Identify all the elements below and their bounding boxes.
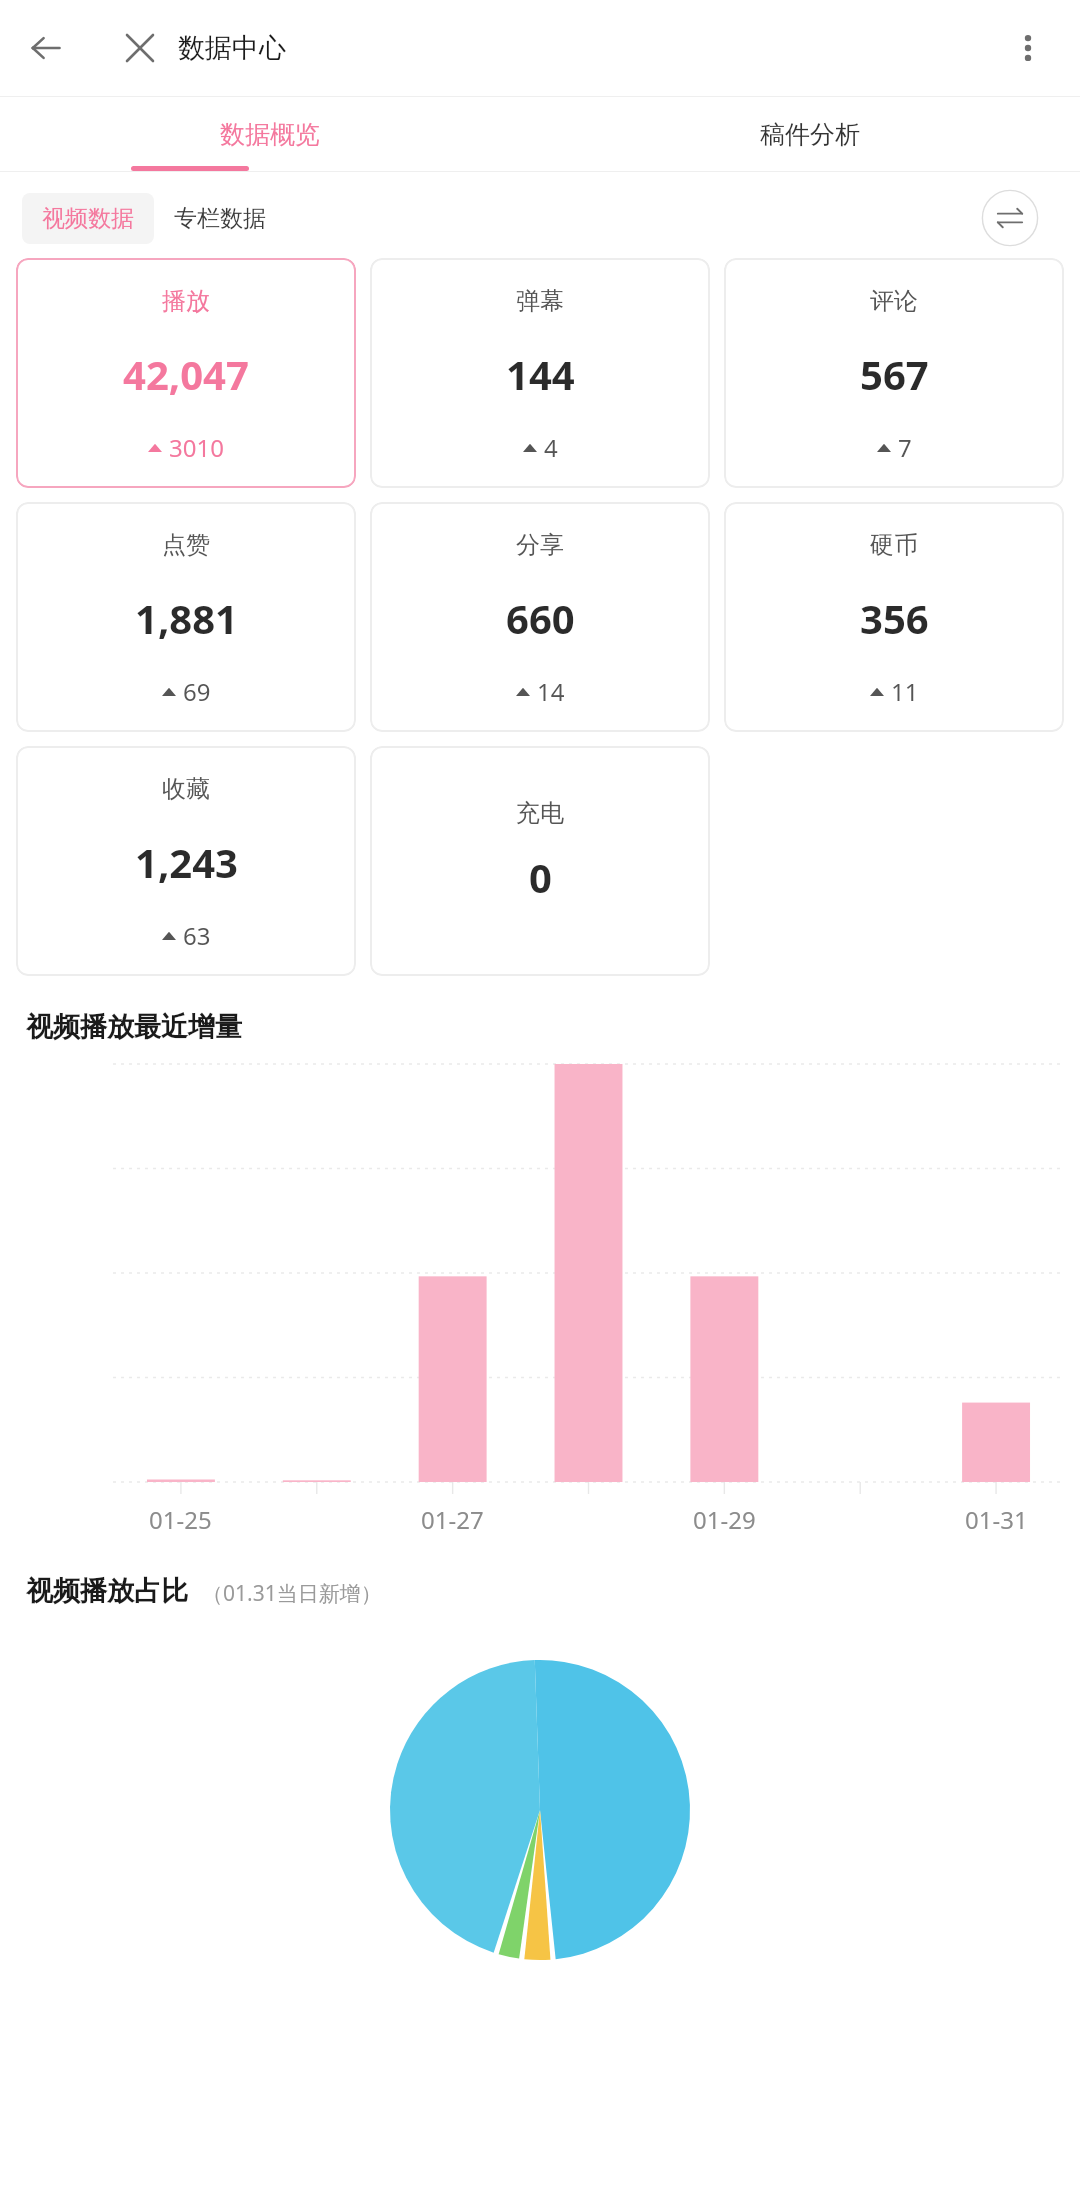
staticText: 69 [183, 675, 211, 708]
staticText: 专栏数据 [174, 204, 266, 233]
staticText: 01-29 [693, 1503, 756, 1536]
button[interactable]: 视频数据 [22, 193, 154, 244]
staticText: 1,243 [135, 835, 238, 889]
staticText: 视频播放占比 [26, 1574, 188, 1608]
staticText: 144 [506, 347, 575, 401]
staticText: 评论 [870, 286, 918, 316]
button[interactable]: Close [110, 18, 170, 78]
staticText: 播放 [162, 286, 210, 316]
staticText: 1,881 [135, 591, 238, 645]
staticText: 视频数据 [42, 204, 134, 233]
staticText: 660 [506, 591, 575, 645]
staticText: 稿件分析 [760, 119, 860, 150]
staticText: 63 [183, 919, 211, 952]
staticText: 42,047 [123, 347, 249, 401]
button[interactable]: 收藏 [16, 746, 356, 976]
staticText: 硬币 [870, 530, 918, 560]
staticText: 3010 [169, 431, 224, 464]
staticText: 01-31 [965, 1503, 1028, 1536]
button[interactable]: 充电 [370, 746, 710, 976]
button[interactable]: Switch data type [980, 188, 1040, 248]
staticText: 数据概览 [220, 119, 320, 150]
button[interactable]: 播放 [16, 258, 356, 488]
staticText: 分享 [516, 530, 564, 560]
staticText: 01-27 [421, 1503, 484, 1536]
staticText: 14 [537, 675, 565, 708]
staticText: 7 [898, 431, 912, 464]
staticText: （01.31当日新增） [202, 1579, 382, 1608]
staticText: 数据中心 [178, 31, 286, 65]
staticText: 11 [891, 675, 919, 708]
staticText: 点赞 [162, 530, 210, 560]
staticText: 567 [860, 347, 929, 401]
button[interactable]: 稿件分析 [540, 97, 1080, 171]
staticText: 356 [860, 591, 929, 645]
staticText: 收藏 [162, 774, 210, 804]
button[interactable]: 评论 [724, 258, 1064, 488]
button[interactable]: Back [14, 16, 78, 80]
button[interactable]: 点赞 [16, 502, 356, 732]
button[interactable]: 专栏数据 [154, 193, 286, 244]
button[interactable]: 分享 [370, 502, 710, 732]
button[interactable]: More options [998, 18, 1058, 78]
button[interactable]: 数据概览 [0, 97, 540, 171]
button[interactable]: 硬币 [724, 502, 1064, 732]
staticText: 01-25 [149, 1503, 212, 1536]
staticText: 弹幕 [516, 286, 564, 316]
staticText: 视频播放最近增量 [26, 1010, 242, 1044]
staticText: 0 [529, 850, 552, 904]
staticText: 4 [544, 431, 558, 464]
staticText: 充电 [516, 798, 564, 828]
button[interactable]: 弹幕 [370, 258, 710, 488]
